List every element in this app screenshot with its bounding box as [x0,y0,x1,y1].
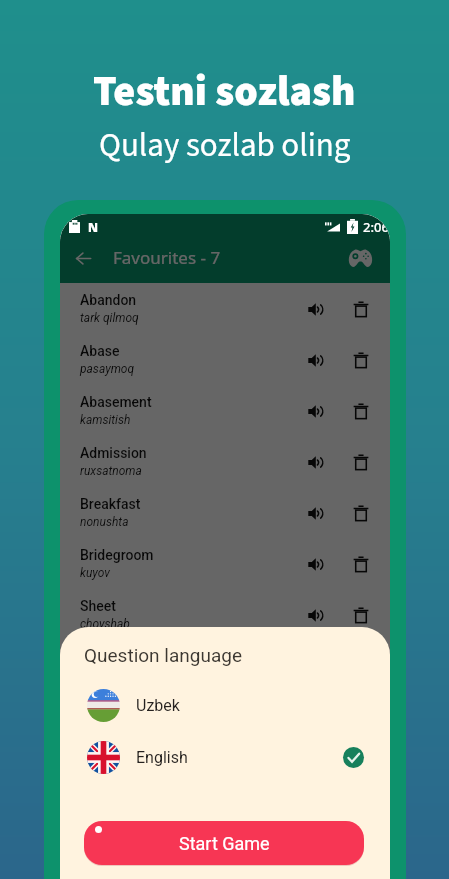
button[interactable]: Delete [346,600,376,630]
staticText: Testni sozlash [93,62,356,122]
staticText: Qulay sozlab oling [99,122,351,169]
staticText: Favourites - 7 [113,246,221,269]
button[interactable]: Pronounce [298,547,332,581]
button[interactable]: Admission [60,436,390,487]
button[interactable]: Back [67,242,99,274]
button[interactable]: Abasement [60,385,390,436]
staticText: Breakfast [80,496,141,512]
button[interactable]: Start Game [84,821,364,865]
button[interactable]: Pronounce [298,292,332,326]
button[interactable]: Abase [60,334,390,385]
staticText: Abasement [80,394,152,410]
button[interactable]: Sheet [60,589,390,640]
staticText: English [136,748,188,767]
button[interactable]: Delete [346,498,376,528]
button[interactable]: Uzbek [84,688,364,722]
button[interactable]: Bridegroom [60,538,390,589]
button[interactable]: Delete [346,396,376,426]
button[interactable]: Pronounce [298,394,332,428]
staticText: kuyov [80,566,110,580]
button[interactable]: Table [60,640,390,691]
staticText: Abase [80,343,120,359]
button[interactable]: English [84,740,364,774]
staticText: 2:06 [363,218,389,236]
staticText: pasaymoq [80,362,135,376]
button[interactable]: Abandon [60,283,390,334]
staticText: choyshab [80,617,130,631]
staticText: tark qilmoq [80,311,139,325]
staticText: nonushta [80,515,129,529]
staticText: N [88,219,99,235]
button[interactable]: Delete [346,345,376,375]
staticText: Admission [80,445,147,461]
button[interactable]: Delete [346,294,376,324]
staticText: ruxsatnoma [80,464,142,478]
staticText: Table [80,649,115,665]
staticText: Bridegroom [80,547,154,563]
staticText: kamsitish [80,413,131,427]
staticText: Uzbek [136,696,180,715]
button[interactable]: Pronounce [298,343,332,377]
button[interactable]: Breakfast [60,487,390,538]
button[interactable]: Pronounce [298,445,332,479]
staticText: Start Game [179,833,270,854]
button[interactable]: Pronounce [298,496,332,530]
staticText: Question language [84,644,242,666]
button[interactable]: Delete [346,447,376,477]
button[interactable]: Delete [346,549,376,579]
staticText: Sheet [80,598,116,614]
staticText: Abandon [80,292,137,308]
button[interactable]: Pronounce [298,598,332,632]
button[interactable]: Play game [344,242,376,274]
